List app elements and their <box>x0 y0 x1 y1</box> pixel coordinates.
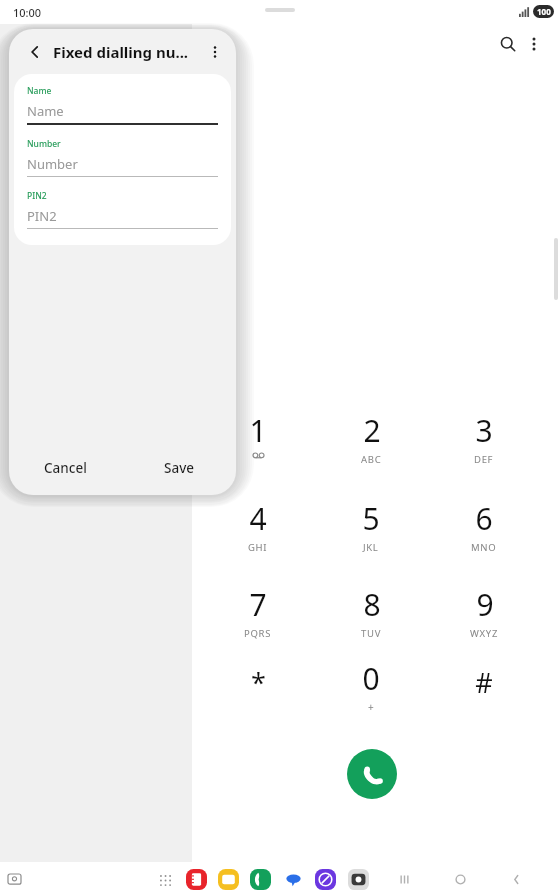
staticText: 5 <box>362 498 380 539</box>
staticText: PIN2 <box>27 190 47 202</box>
staticText: 10:00 <box>13 5 42 20</box>
button[interactable]: Search <box>493 29 523 59</box>
button[interactable]: # <box>442 658 526 720</box>
button[interactable]: Gallery <box>216 867 240 891</box>
button[interactable]: Apps <box>157 872 173 888</box>
staticText: 4 <box>249 498 267 539</box>
staticText: 6 <box>475 498 493 539</box>
staticText: PIN2 <box>27 207 57 225</box>
staticText: Number <box>27 138 61 150</box>
button[interactable]: * <box>216 658 300 720</box>
button[interactable]: 3 <box>442 410 526 472</box>
button[interactable]: 2 <box>329 410 413 472</box>
button[interactable]: PIN2 <box>27 190 218 229</box>
staticText: Number <box>27 155 78 173</box>
button[interactable]: Samsung Notes <box>184 867 208 891</box>
button[interactable]: Home <box>448 867 472 891</box>
button[interactable]: Back <box>504 867 528 891</box>
staticText: 9 <box>476 584 494 625</box>
staticText: Name <box>27 85 52 97</box>
staticText: 7 <box>249 584 267 625</box>
button[interactable]: 4 <box>216 498 300 560</box>
button[interactable]: Call <box>347 749 397 799</box>
staticText: MNO <box>471 541 497 554</box>
button[interactable]: 8 <box>329 584 413 646</box>
staticText: GHI <box>248 541 268 554</box>
button[interactable]: Name <box>27 85 218 125</box>
staticText: # <box>475 664 493 701</box>
button[interactable]: Messages <box>281 867 305 891</box>
staticText: Save <box>164 459 195 477</box>
button[interactable]: Phone <box>248 867 272 891</box>
staticText: Fixed dialling nu... <box>53 42 189 62</box>
staticText: + <box>368 700 374 714</box>
button[interactable]: 9 <box>442 584 526 646</box>
button[interactable]: 0 <box>329 658 413 720</box>
button[interactable]: Cancel <box>9 441 122 495</box>
staticText: PQRS <box>244 627 272 640</box>
button[interactable]: 6 <box>442 498 526 560</box>
staticText: * <box>251 664 266 701</box>
staticText: Cancel <box>44 459 87 477</box>
button[interactable]: 1 <box>216 410 300 472</box>
staticText: 8 <box>363 584 381 625</box>
button[interactable]: Save <box>122 441 236 495</box>
staticText: 2 <box>363 410 381 451</box>
button[interactable]: 7 <box>216 584 300 646</box>
staticText: JKL <box>363 541 379 554</box>
button[interactable]: Recent app <box>4 870 24 890</box>
staticText: TUV <box>361 627 382 640</box>
staticText: 100 <box>537 6 551 17</box>
button[interactable]: Camera <box>346 867 370 891</box>
staticText: DEF <box>474 453 494 466</box>
button[interactable]: Internet <box>313 867 337 891</box>
staticText: WXYZ <box>470 627 499 640</box>
button[interactable]: 5 <box>329 498 413 560</box>
staticText: 0 <box>362 658 380 699</box>
button[interactable]: More options <box>202 39 228 65</box>
staticText: Name <box>27 102 64 120</box>
button[interactable]: Recents <box>392 867 416 891</box>
button[interactable]: Back <box>22 39 48 65</box>
button[interactable]: Number <box>27 138 218 177</box>
staticText: 3 <box>475 410 493 451</box>
staticText: 1 <box>249 410 267 451</box>
button[interactable]: More options <box>519 29 549 59</box>
staticText: ABC <box>361 453 382 466</box>
